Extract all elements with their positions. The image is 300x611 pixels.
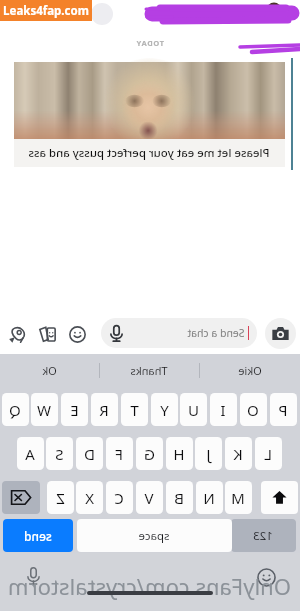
staticText: M: [231, 488, 245, 508]
button[interactable]: Send a chat: [101, 318, 257, 348]
staticText: Leaks4fap.com: [3, 3, 89, 19]
button[interactable]: B: [166, 481, 193, 514]
button[interactable]: send: [3, 519, 73, 552]
button[interactable]: C: [106, 481, 133, 514]
button[interactable]: E: [61, 393, 88, 426]
staticText: B: [174, 488, 184, 508]
staticText: I: [220, 400, 226, 420]
staticText: A: [25, 444, 35, 464]
button[interactable]: W: [31, 393, 58, 426]
button[interactable]: Camera: [265, 318, 296, 349]
staticText: OnlyFans.com/crystalstorm: [8, 571, 291, 601]
staticText: T: [130, 400, 139, 420]
button[interactable]: Q: [2, 393, 29, 426]
button[interactable]: Ok: [0, 354, 99, 386]
button[interactable]: P: [270, 393, 297, 426]
button[interactable]: S: [46, 437, 73, 470]
staticText: R: [99, 400, 109, 420]
staticText: X: [85, 488, 94, 508]
staticText: D: [84, 444, 95, 464]
staticText: Please let me eat your perfect pussy and…: [28, 145, 270, 161]
staticText: U: [188, 400, 199, 420]
button[interactable]: [261, 481, 298, 514]
staticText: F: [115, 444, 123, 464]
button[interactable]: H: [166, 437, 193, 470]
button[interactable]: F: [106, 437, 133, 470]
staticText: G: [144, 444, 155, 464]
button[interactable]: K: [225, 437, 252, 470]
button[interactable]: V: [136, 481, 163, 514]
staticText: space: [138, 528, 170, 544]
staticText: C: [114, 488, 124, 508]
staticText: O: [247, 400, 259, 420]
staticText: H: [173, 444, 185, 464]
staticText: Q: [9, 400, 21, 420]
button[interactable]: Rocket: [5, 321, 31, 347]
button[interactable]: Emoji keyboard: [256, 566, 278, 588]
button[interactable]: M: [225, 481, 252, 514]
staticText: P: [278, 400, 288, 420]
button[interactable]: O: [240, 393, 267, 426]
staticText: 123: [253, 528, 273, 544]
staticText: S: [55, 444, 64, 464]
button[interactable]: Y: [151, 393, 178, 426]
staticText: Okie: [238, 363, 262, 378]
staticText: K: [233, 444, 243, 464]
button[interactable]: 123: [231, 519, 296, 552]
button[interactable]: Okie: [200, 354, 300, 386]
button[interactable]: Stickers: [35, 321, 61, 347]
button[interactable]: R: [91, 393, 118, 426]
staticText: V: [144, 488, 154, 508]
button[interactable]: D: [76, 437, 103, 470]
button[interactable]: U: [180, 393, 207, 426]
button[interactable]: L: [255, 437, 282, 470]
staticText: Send a chat: [187, 326, 245, 340]
button[interactable]: space: [77, 519, 232, 552]
button[interactable]: Thanks: [100, 354, 199, 386]
staticText: J: [206, 444, 211, 464]
button[interactable]: J: [195, 437, 222, 470]
staticText: W: [37, 400, 51, 420]
staticText: Z: [56, 488, 65, 508]
staticText: TODAY: [136, 38, 164, 48]
button[interactable]: N: [196, 481, 223, 514]
button[interactable]: G: [136, 437, 163, 470]
button[interactable]: A: [17, 437, 44, 470]
button[interactable]: Emoji: [65, 321, 91, 347]
button[interactable]: X: [76, 481, 103, 514]
button[interactable]: I: [210, 393, 237, 426]
staticText: Y: [160, 400, 169, 420]
staticText: Ok: [42, 363, 57, 378]
button[interactable]: [2, 481, 40, 514]
staticText: send: [24, 528, 52, 544]
button[interactable]: T: [121, 393, 148, 426]
staticText: Thanks: [130, 363, 168, 378]
staticText: E: [70, 400, 79, 420]
button[interactable]: Microphone: [26, 565, 42, 586]
staticText: L: [264, 444, 272, 464]
button[interactable]: Z: [47, 481, 74, 514]
staticText: N: [203, 488, 215, 508]
